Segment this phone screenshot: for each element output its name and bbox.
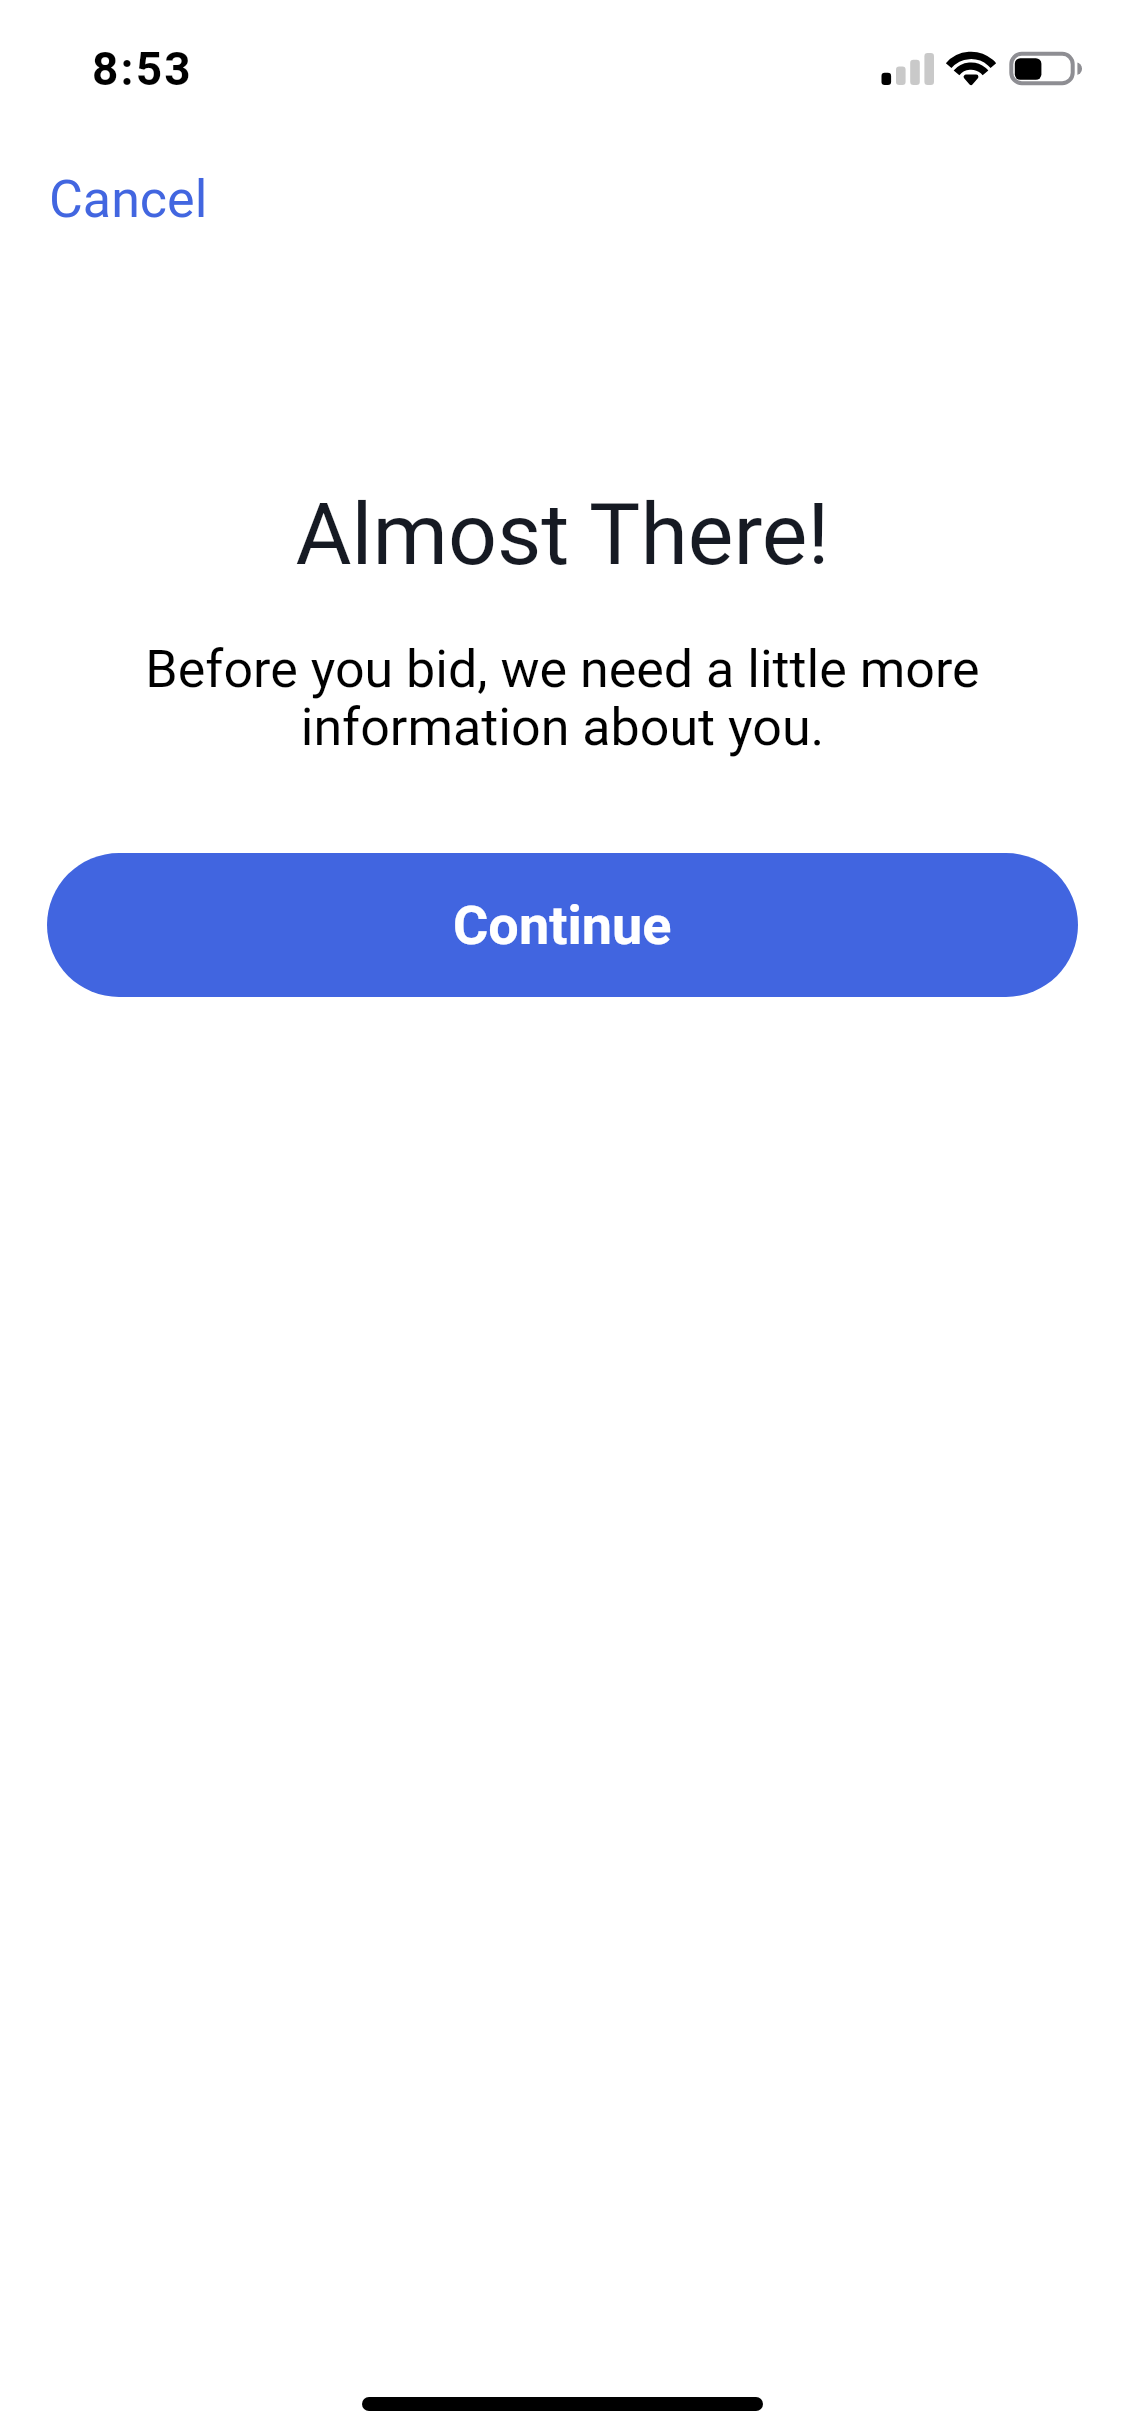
staticText: Before you bid, we need a little more in… — [130, 639, 995, 758]
other: Home indicator — [362, 2397, 763, 2411]
button[interactable]: Cancel — [29, 155, 228, 244]
staticText: Almost There! — [0, 484, 1125, 585]
button[interactable]: Continue — [47, 853, 1078, 997]
staticText: 8:53 — [92, 42, 193, 96]
staticText: Cancel — [49, 169, 208, 230]
other: Cellular signal, Wi-Fi and battery statu… — [875, 40, 1090, 95]
staticText: Continue — [453, 894, 672, 957]
